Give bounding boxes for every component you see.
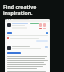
button[interactable]	[7, 46, 48, 50]
button[interactable]	[5, 19, 50, 72]
button[interactable]	[7, 52, 21, 54]
button[interactable]	[7, 23, 48, 29]
staticText: Find creative inspiration.	[3, 3, 37, 16]
button[interactable]	[7, 32, 48, 42]
